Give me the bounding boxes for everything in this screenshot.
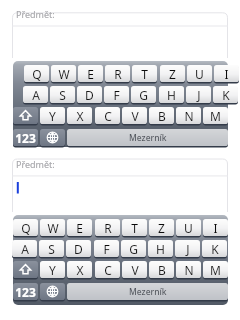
staticText: C [104, 262, 112, 278]
staticText: J [197, 87, 201, 103]
button[interactable]: K [202, 240, 227, 259]
staticText: Předmět: [16, 158, 55, 170]
staticText: V [131, 108, 139, 124]
staticText: R [114, 66, 122, 82]
button[interactable]: E [67, 219, 92, 238]
button[interactable]: Předmět: [16, 8, 55, 20]
button[interactable]: J [175, 240, 200, 259]
button[interactable]: Předmět: [16, 158, 55, 170]
staticText: G [129, 241, 138, 257]
button[interactable]: F [94, 240, 119, 259]
button[interactable]: Shift [13, 107, 38, 126]
button[interactable]: Change keyboard language [40, 129, 65, 148]
button[interactable]: K [213, 86, 238, 105]
staticText: E [76, 220, 83, 236]
button[interactable]: Q [13, 219, 38, 238]
button[interactable]: U [187, 65, 212, 84]
staticText: I [213, 220, 218, 236]
button[interactable]: I [214, 65, 239, 84]
staticText: D [85, 87, 94, 103]
button[interactable]: Z [149, 219, 174, 238]
button[interactable]: S [50, 86, 75, 105]
button[interactable]: M [203, 261, 228, 280]
button[interactable]: Y [40, 107, 65, 126]
staticText: K [211, 241, 219, 257]
button[interactable]: Y [40, 261, 65, 280]
button[interactable]: Q [24, 65, 49, 84]
button[interactable]: H [148, 240, 173, 259]
staticText: Mezerník [129, 132, 167, 144]
staticText: T [131, 220, 138, 236]
staticText: C [104, 108, 112, 124]
button[interactable]: F [104, 86, 129, 105]
button[interactable]: V [122, 107, 147, 126]
staticText: W [58, 66, 70, 82]
staticText: N [184, 262, 194, 278]
button[interactable]: R [95, 219, 120, 238]
staticText: A [21, 241, 29, 257]
staticText: Y [49, 262, 56, 278]
button[interactable]: R [105, 65, 130, 84]
staticText: A [32, 87, 40, 103]
staticText: S [59, 87, 66, 103]
staticText: F [103, 241, 110, 257]
button[interactable]: Mezerník [67, 283, 228, 302]
staticText: Q [21, 220, 31, 236]
staticText: Q [32, 66, 42, 82]
button[interactable]: X [67, 107, 92, 126]
button[interactable]: D [77, 86, 102, 105]
button[interactable]: Shift [13, 261, 38, 280]
button[interactable]: V [122, 261, 147, 280]
button[interactable]: W [51, 65, 76, 84]
button[interactable]: B [149, 107, 174, 126]
staticText: Y [49, 108, 56, 124]
staticText: S [48, 241, 55, 257]
button[interactable]: A [23, 86, 48, 105]
button[interactable]: A [12, 240, 37, 259]
button[interactable]: E [78, 65, 103, 84]
staticText: 123 [15, 284, 36, 300]
button[interactable]: M [203, 107, 228, 126]
button[interactable]: X [67, 261, 92, 280]
staticText: Z [158, 220, 165, 236]
staticText: H [167, 87, 176, 103]
button[interactable]: N [176, 107, 201, 126]
staticText: X [76, 262, 84, 278]
staticText: F [113, 87, 120, 103]
button[interactable]: T [122, 219, 147, 238]
button[interactable]: T [132, 65, 157, 84]
button[interactable]: Change keyboard language [40, 283, 65, 302]
staticText: U [184, 220, 193, 236]
button[interactable]: U [176, 219, 201, 238]
button[interactable]: I [203, 219, 228, 238]
staticText: B [158, 108, 166, 124]
staticText: Z [169, 66, 176, 82]
button[interactable]: C [95, 261, 120, 280]
staticText: 123 [15, 130, 36, 146]
staticText: R [104, 220, 112, 236]
staticText: Mezerník [129, 286, 167, 298]
button[interactable]: Z [160, 65, 185, 84]
button[interactable]: 123 [13, 283, 38, 302]
button[interactable]: S [39, 240, 64, 259]
staticText: K [222, 87, 230, 103]
staticText: D [74, 241, 83, 257]
staticText: T [141, 66, 148, 82]
button[interactable]: 123 [13, 129, 38, 148]
staticText: I [224, 66, 229, 82]
staticText: X [76, 108, 84, 124]
button[interactable]: W [40, 219, 65, 238]
staticText: B [158, 262, 166, 278]
button[interactable]: D [66, 240, 91, 259]
button[interactable]: G [121, 240, 146, 259]
button[interactable]: H [159, 86, 184, 105]
button[interactable]: N [176, 261, 201, 280]
button[interactable]: B [149, 261, 174, 280]
staticText: M [210, 262, 221, 278]
button[interactable]: J [186, 86, 211, 105]
button[interactable]: G [131, 86, 156, 105]
staticText: Předmět: [16, 8, 55, 20]
button[interactable]: C [95, 107, 120, 126]
button[interactable]: Mezerník [67, 129, 228, 148]
staticText: N [184, 108, 194, 124]
